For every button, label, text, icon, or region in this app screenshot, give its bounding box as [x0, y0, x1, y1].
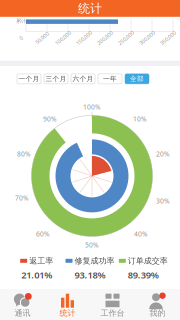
staticText: 修复成功率	[74, 256, 114, 266]
staticText: 300,000	[137, 34, 156, 41]
staticText: 150,000	[74, 34, 93, 41]
staticText: 0	[19, 34, 22, 41]
staticText: 89.39%	[128, 269, 159, 281]
staticText: 全部	[130, 75, 144, 83]
staticText: 100,000	[53, 34, 72, 41]
button[interactable]: 我的	[135, 288, 180, 320]
staticText: 工作台	[100, 308, 124, 318]
staticText: 统计	[59, 308, 75, 318]
button[interactable]: 三个月	[44, 74, 68, 84]
button[interactable]: 统计	[45, 288, 90, 320]
staticText: 93.18%	[74, 269, 105, 281]
staticText: 50%	[85, 240, 99, 249]
staticText: 六个月	[72, 75, 93, 83]
staticText: 70%	[15, 193, 29, 202]
staticText: 250,000	[116, 34, 135, 41]
button[interactable]: 工作台	[90, 288, 135, 320]
staticText: 返工率	[29, 256, 53, 266]
button[interactable]: 全部	[125, 74, 149, 84]
staticText: 80%	[17, 149, 31, 158]
staticText: 三个月	[45, 75, 66, 83]
staticText: 21.01%	[21, 269, 52, 281]
staticText: 通讯	[14, 308, 30, 318]
staticText: 一个月	[18, 75, 39, 83]
staticText: 一年	[103, 75, 117, 83]
staticText: 90%	[43, 114, 57, 123]
staticText: 订单成交率	[128, 256, 168, 266]
staticText: 50,000	[34, 34, 50, 41]
staticText: 100%	[83, 102, 101, 111]
staticText: 200,000	[95, 34, 114, 41]
staticText: 350,000	[158, 34, 177, 41]
button[interactable]: 一年	[98, 74, 122, 84]
button[interactable]: 通讯	[0, 288, 45, 320]
staticText: 统计	[78, 1, 102, 16]
staticText: 累计	[16, 18, 26, 24]
button[interactable]: 六个月	[71, 74, 95, 84]
staticText: 我的	[149, 308, 165, 318]
staticText: 10%	[133, 114, 147, 123]
staticText: 20%	[156, 149, 170, 158]
staticText: 30%	[156, 196, 170, 205]
button[interactable]: 一个月	[17, 74, 41, 84]
staticText: 60%	[36, 229, 50, 238]
staticText: 40%	[134, 229, 148, 238]
